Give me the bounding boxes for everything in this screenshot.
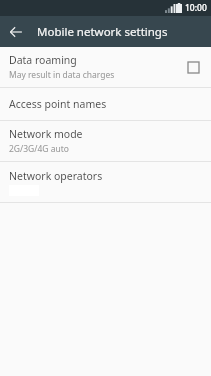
staticText: 2G/3G/4G auto <box>9 143 69 155</box>
staticText: Network operators <box>9 169 103 183</box>
staticText: Network mode <box>9 127 83 141</box>
button[interactable]: Network operators <box>0 162 211 202</box>
button[interactable]: Data roaming <box>0 47 211 87</box>
button[interactable]: Data roaming checkbox <box>181 55 205 79</box>
staticText: Mobile network settings <box>37 24 168 40</box>
button[interactable]: Access point names <box>0 88 211 120</box>
staticText: 10:00 <box>185 2 207 14</box>
staticText: Data roaming <box>9 53 77 67</box>
staticText: May result in data charges <box>9 69 115 81</box>
button[interactable]: Network mode <box>0 121 211 161</box>
staticText: Access point names <box>9 97 107 111</box>
button[interactable]: Navigate up <box>5 21 27 43</box>
